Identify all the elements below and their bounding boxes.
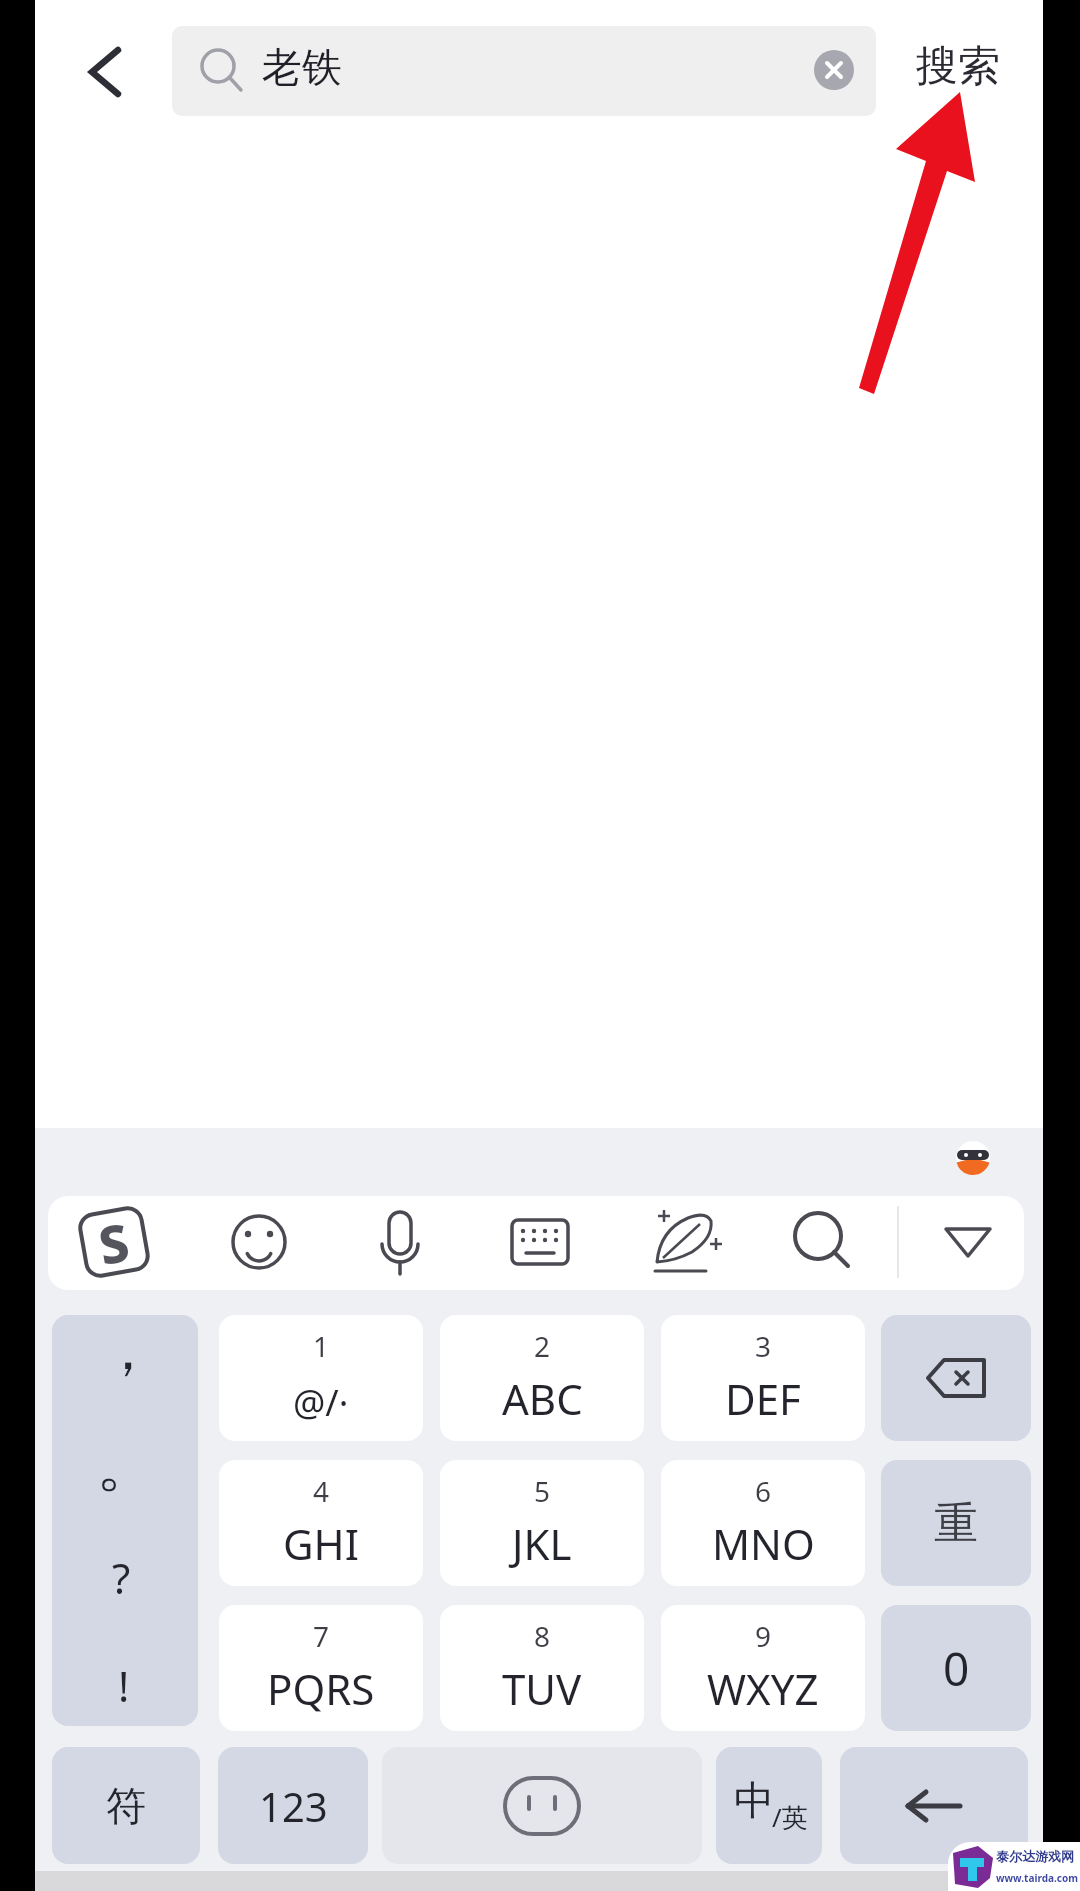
- staticText: JKL: [512, 1515, 572, 1572]
- staticText: ?: [112, 1549, 131, 1606]
- staticText: 5: [534, 1472, 551, 1510]
- button[interactable]: 8: [440, 1605, 644, 1731]
- staticText: TUV: [502, 1660, 582, 1717]
- staticText: 重: [934, 1496, 978, 1551]
- staticText: 泰尔达游戏网: [996, 1848, 1074, 1864]
- staticText: 3: [755, 1327, 772, 1365]
- button[interactable]: ，: [52, 1315, 198, 1726]
- staticText: 8: [534, 1617, 551, 1655]
- staticText: www.tairda.com: [996, 1871, 1078, 1885]
- button[interactable]: 符: [52, 1747, 200, 1864]
- staticText: ，: [100, 1315, 156, 1386]
- staticText: 123: [259, 1779, 328, 1833]
- button[interactable]: [881, 1315, 1031, 1441]
- button[interactable]: 4: [219, 1460, 423, 1586]
- staticText: 老铁: [262, 42, 342, 92]
- staticText: 0: [943, 1637, 970, 1700]
- button[interactable]: [78, 1207, 150, 1279]
- button[interactable]: 1: [219, 1315, 423, 1441]
- button[interactable]: [645, 1207, 717, 1279]
- button[interactable]: [364, 1207, 436, 1279]
- button[interactable]: 2: [440, 1315, 644, 1441]
- button[interactable]: 9: [661, 1605, 865, 1731]
- staticText: 1: [313, 1327, 330, 1365]
- staticText: MNO: [712, 1515, 815, 1572]
- staticText: 2: [534, 1327, 551, 1365]
- staticText: 中: [734, 1775, 774, 1825]
- button[interactable]: [382, 1747, 702, 1864]
- button[interactable]: 5: [440, 1460, 644, 1586]
- staticText: 7: [313, 1617, 330, 1655]
- button[interactable]: [840, 1747, 1028, 1864]
- staticText: 9: [755, 1617, 772, 1655]
- button[interactable]: 3: [661, 1315, 865, 1441]
- staticText: ABC: [502, 1370, 583, 1427]
- button[interactable]: 重: [881, 1460, 1031, 1586]
- button[interactable]: 老铁: [172, 26, 876, 116]
- staticText: /英: [772, 1799, 808, 1835]
- button[interactable]: 中: [716, 1747, 822, 1864]
- button[interactable]: [814, 50, 854, 90]
- button[interactable]: [932, 1207, 1004, 1279]
- staticText: S: [93, 1205, 135, 1279]
- staticText: @/·: [293, 1378, 349, 1427]
- staticText: WXYZ: [707, 1660, 819, 1717]
- staticText: DEF: [725, 1370, 801, 1427]
- button[interactable]: [223, 1207, 295, 1279]
- staticText: !: [118, 1657, 130, 1714]
- staticText: PQRS: [267, 1660, 375, 1717]
- button[interactable]: 7: [219, 1605, 423, 1731]
- button[interactable]: [504, 1207, 576, 1279]
- staticText: 6: [755, 1472, 772, 1510]
- button[interactable]: [784, 1207, 856, 1279]
- button[interactable]: 6: [661, 1460, 865, 1586]
- staticText: GHI: [283, 1515, 359, 1572]
- button[interactable]: 123: [218, 1747, 368, 1864]
- button[interactable]: 搜索: [916, 40, 1000, 93]
- staticText: 。: [96, 1425, 158, 1503]
- button[interactable]: [80, 46, 136, 102]
- staticText: 符: [106, 1781, 146, 1831]
- button[interactable]: 0: [881, 1605, 1031, 1731]
- staticText: 4: [313, 1472, 330, 1510]
